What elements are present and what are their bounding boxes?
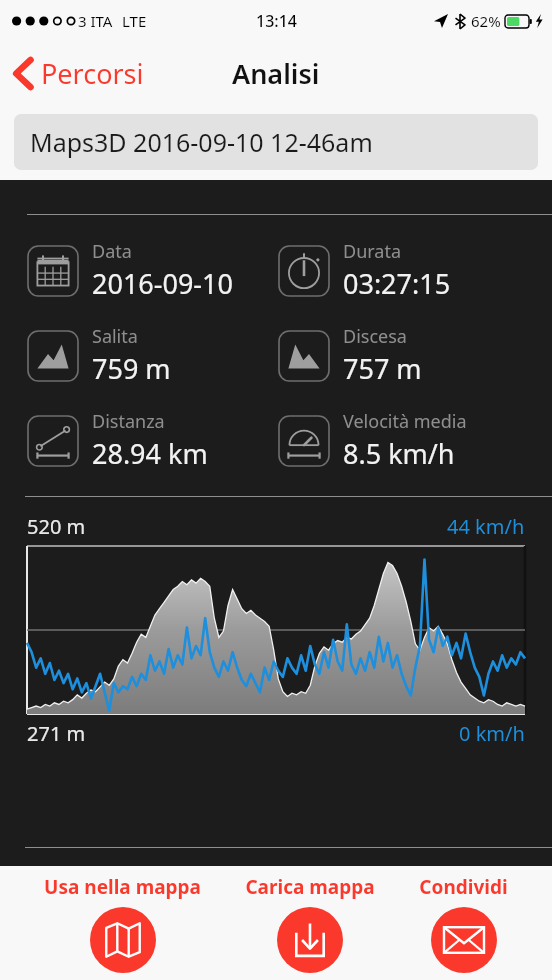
button[interactable]: Maps3D 2016-09-10 12-46am xyxy=(14,114,538,170)
button[interactable]: Velocità media xyxy=(278,409,552,472)
staticText: 2016-09-10 xyxy=(92,265,233,302)
button[interactable]: Carica mappa xyxy=(245,866,375,973)
button[interactable]: Usa nella mappa xyxy=(44,866,201,973)
staticText: 271 m xyxy=(27,720,86,747)
staticText: 0 km/h xyxy=(459,720,525,747)
button[interactable]: Durata xyxy=(278,239,552,302)
staticText: 62% xyxy=(471,11,501,31)
button[interactable]: Condividi xyxy=(419,866,508,973)
staticText: Analisi xyxy=(232,55,320,92)
staticText: Data xyxy=(92,239,132,264)
staticText: Carica mappa xyxy=(245,874,375,900)
staticText: LTE xyxy=(122,11,147,31)
staticText: Discesa xyxy=(343,324,407,349)
staticText: Maps3D 2016-09-10 12-46am xyxy=(30,125,373,159)
button[interactable]: Discesa xyxy=(278,324,552,387)
staticText: Durata xyxy=(343,239,402,264)
staticText: 03:27:15 xyxy=(343,265,451,302)
staticText: Usa nella mappa xyxy=(44,874,201,900)
staticText: 28.94 km xyxy=(92,435,208,472)
staticText: Percorsi xyxy=(41,55,144,92)
staticText: 44 km/h xyxy=(447,513,525,540)
staticText: 8.5 km/h xyxy=(343,435,455,472)
staticText: 759 m xyxy=(92,350,171,387)
staticText: Distanza xyxy=(92,409,165,434)
staticText: 757 m xyxy=(343,350,422,387)
staticText: 520 m xyxy=(27,513,86,540)
staticText: Condividi xyxy=(419,874,508,900)
staticText: Velocità media xyxy=(343,409,467,434)
button[interactable]: Salita xyxy=(27,324,276,387)
staticText: Salita xyxy=(92,324,138,349)
staticText: 13:14 xyxy=(256,10,297,32)
staticText: 3 ITA xyxy=(78,11,113,31)
button[interactable]: Distanza xyxy=(27,409,276,472)
button[interactable]: Data xyxy=(27,239,276,302)
button[interactable]: Percorsi xyxy=(0,49,156,98)
